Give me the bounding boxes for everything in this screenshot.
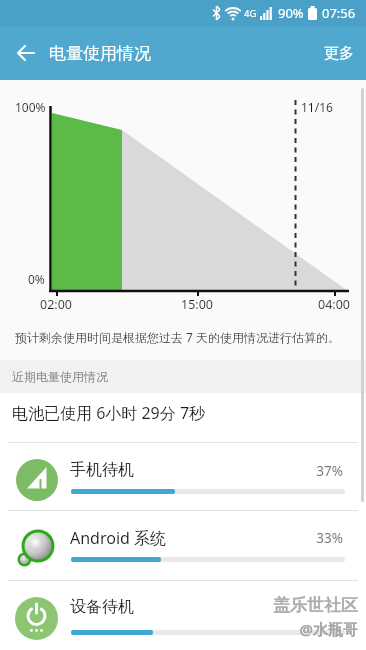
staticText: 11/16 <box>301 99 333 115</box>
staticText: 02:00 <box>40 296 72 313</box>
staticText: 电池已使用 6小时 29分 7秒 <box>12 402 206 424</box>
staticText: 设备待机 <box>70 597 134 617</box>
button[interactable]: 手机待机 <box>0 443 366 510</box>
staticText: 预计剩余使用时间是根据您过去 7 天的使用情况进行估算的。 <box>15 329 341 345</box>
staticText: Android 系统 <box>70 527 167 549</box>
button[interactable]: Android 系统 <box>0 511 366 580</box>
staticText: 15:00 <box>181 296 213 313</box>
staticText: 37% <box>293 462 343 480</box>
button[interactable] <box>8 35 44 71</box>
staticText: 手机待机 <box>70 460 134 480</box>
staticText: 04:00 <box>318 296 350 313</box>
staticText: 100% <box>15 99 46 115</box>
staticText: 0% <box>28 271 45 287</box>
staticText: @水瓶哥 <box>278 619 358 639</box>
staticText: 4G <box>244 7 257 20</box>
staticText: 33% <box>293 529 343 547</box>
staticText: 90% <box>278 4 304 22</box>
staticText: 近期电量使用情况 <box>12 369 108 384</box>
button[interactable]: 设备待机 <box>0 581 366 650</box>
button[interactable]: 更多 <box>312 30 366 77</box>
staticText: 07:56 <box>322 4 356 22</box>
staticText: 电量使用情况 <box>49 43 151 64</box>
staticText: 盖乐世社区 <box>258 595 358 616</box>
staticText: 更多 <box>324 44 354 63</box>
